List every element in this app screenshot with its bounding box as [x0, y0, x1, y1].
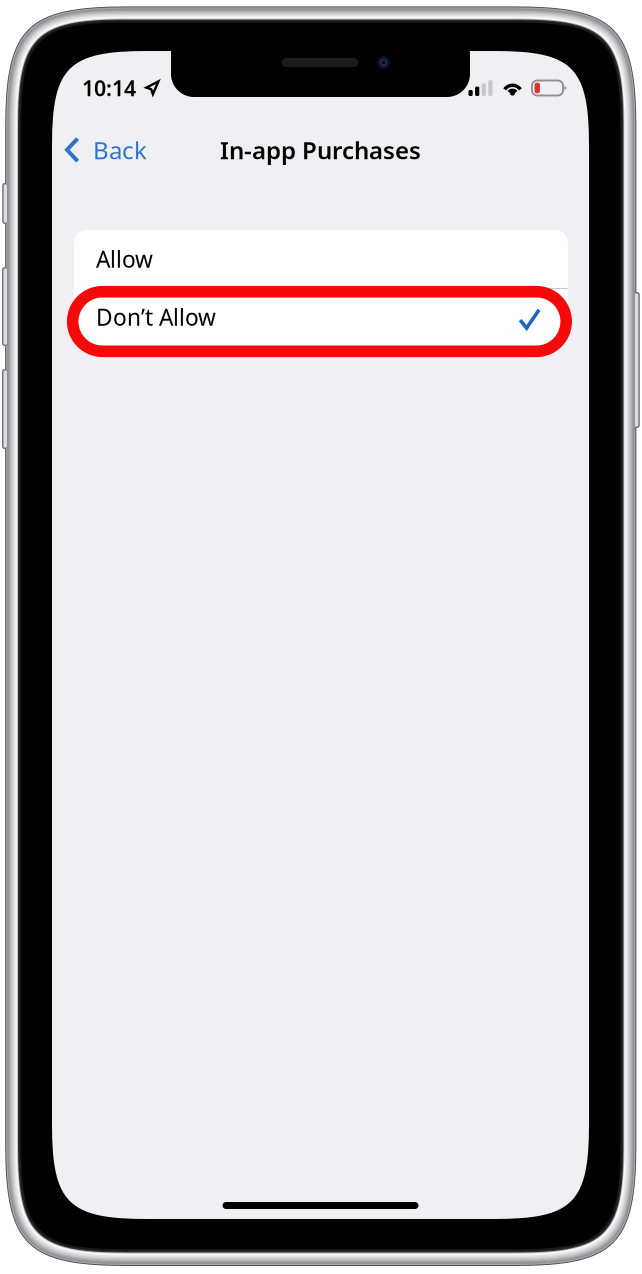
button[interactable]: Allow [74, 230, 568, 288]
staticText: Don’t Allow [96, 302, 216, 332]
staticText: Back [93, 134, 147, 166]
staticText: In-app Purchases [220, 134, 421, 166]
staticText: 10:14 [82, 74, 136, 102]
staticText: Allow [96, 244, 153, 274]
button[interactable]: Back [52, 123, 159, 177]
button[interactable]: Don’t Allow [74, 288, 568, 346]
